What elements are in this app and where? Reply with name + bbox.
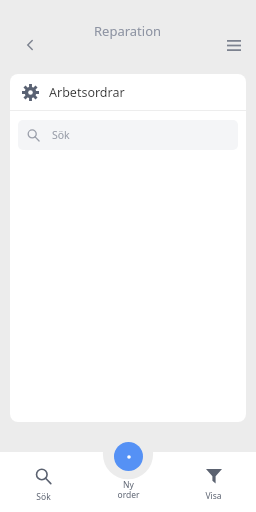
button[interactable]: Sök xyxy=(18,120,238,150)
button[interactable]: New order xyxy=(114,442,143,471)
staticText: Sök xyxy=(36,491,51,503)
button[interactable]: Ny order xyxy=(86,452,171,500)
staticText: Visa xyxy=(205,490,222,502)
staticText: Reparation xyxy=(94,22,162,40)
staticText: Ny order xyxy=(117,479,140,500)
staticText: Sök xyxy=(52,128,70,142)
button[interactable]: Back xyxy=(16,31,44,59)
button[interactable]: Menu xyxy=(220,31,248,59)
button[interactable]: Visa xyxy=(171,452,256,502)
button[interactable]: Arbetsordrar xyxy=(10,74,246,110)
button[interactable]: Sök xyxy=(0,452,86,503)
staticText: Arbetsordrar xyxy=(49,84,125,101)
